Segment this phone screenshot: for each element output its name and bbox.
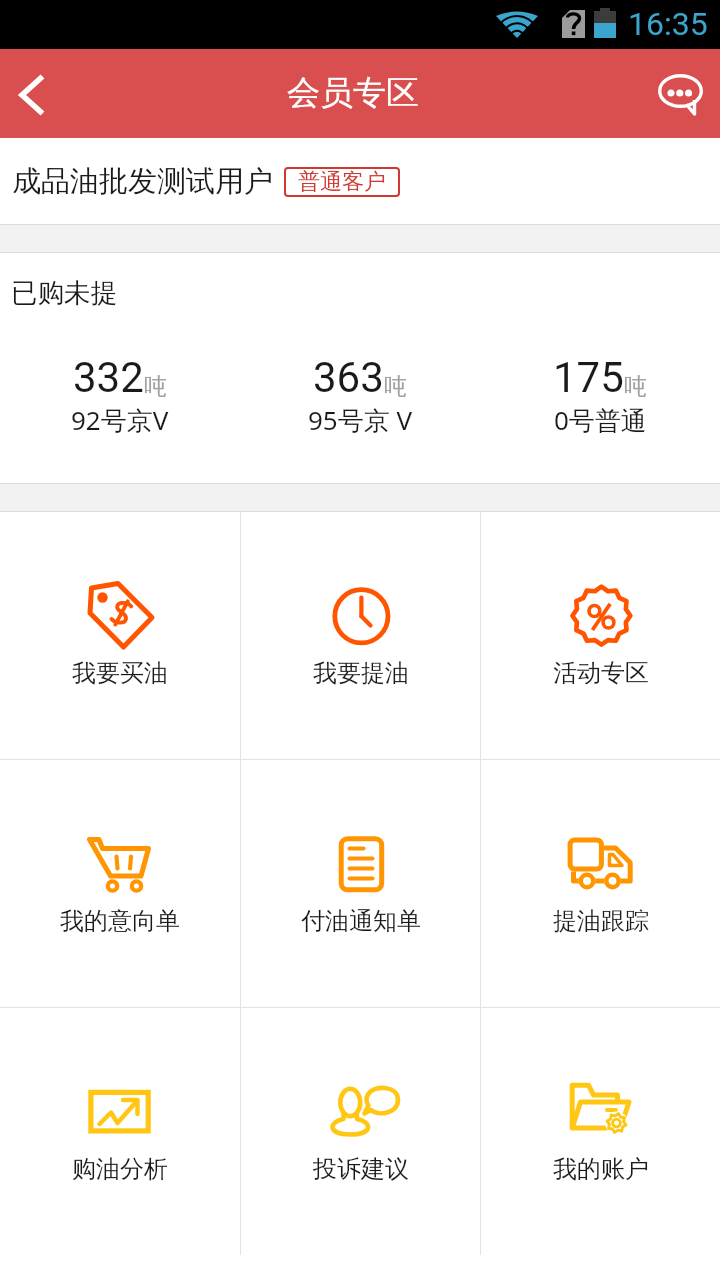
button[interactable]: Messages — [630, 49, 720, 138]
staticText: 92号京V — [71, 402, 169, 438]
staticText: 175 — [553, 353, 624, 402]
staticText: 95号京 V — [308, 402, 413, 438]
staticText: 363 — [313, 353, 384, 402]
staticText: 我要提油 — [313, 658, 409, 688]
staticText: 0号普通 — [554, 402, 647, 438]
staticText: 成品油批发测试用户 — [12, 163, 273, 200]
staticText: 投诉建议 — [313, 1154, 409, 1184]
button[interactable]: 我的意向单 — [0, 760, 240, 1007]
staticText: 活动专区 — [553, 658, 649, 688]
staticText: 我的账户 — [553, 1154, 649, 1184]
button[interactable]: 我要买油 — [0, 512, 240, 759]
staticText: 会员专区 — [287, 72, 419, 114]
button[interactable]: 提油跟踪 — [481, 760, 720, 1007]
button[interactable]: 我的账户 — [481, 1008, 720, 1255]
staticText: 吨 — [144, 372, 167, 401]
button[interactable]: 活动专区 — [481, 512, 720, 759]
staticText: 332 — [73, 353, 144, 402]
staticText: 购油分析 — [72, 1154, 168, 1184]
button[interactable]: 投诉建议 — [241, 1008, 480, 1255]
button[interactable]: 我要提油 — [241, 512, 480, 759]
staticText: 16:35 — [628, 5, 708, 43]
staticText: 我的意向单 — [60, 906, 180, 936]
staticText: 吨 — [384, 372, 407, 401]
staticText: 我要买油 — [72, 658, 168, 688]
staticText: 吨 — [624, 372, 647, 401]
staticText: 提油跟踪 — [553, 906, 649, 936]
button[interactable]: Back — [0, 49, 82, 138]
staticText: 已购未提 — [11, 276, 117, 309]
button[interactable]: 付油通知单 — [241, 760, 480, 1007]
staticText: 普通客户 — [298, 168, 386, 196]
button[interactable]: 购油分析 — [0, 1008, 240, 1255]
staticText: 付油通知单 — [301, 906, 421, 936]
